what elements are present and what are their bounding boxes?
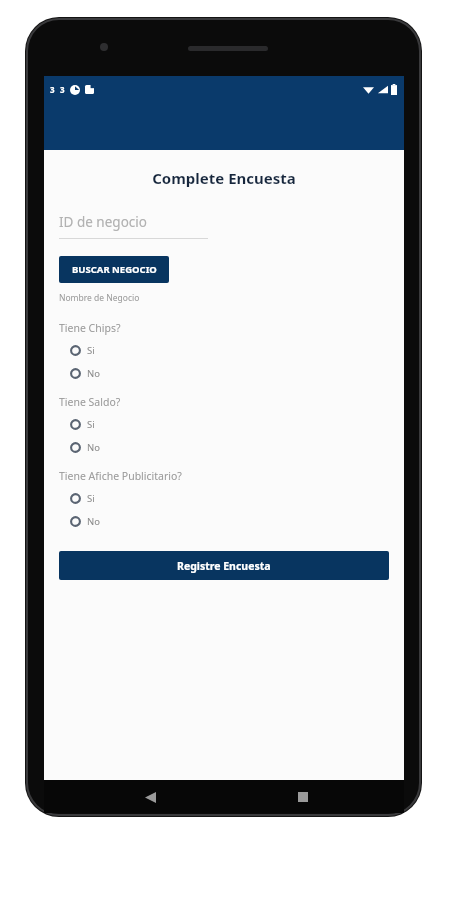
button[interactable]: No — [59, 363, 389, 383]
button[interactable]: Si — [59, 488, 389, 508]
staticText: Si — [87, 492, 95, 505]
button[interactable]: ID de negocio — [59, 213, 208, 239]
staticText: 3 — [60, 84, 65, 95]
staticText: Complete Encuesta — [152, 168, 296, 188]
staticText: Tiene Saldo? — [59, 395, 121, 409]
button[interactable]: BUSCAR NEGOCIO — [59, 256, 169, 283]
button[interactable]: Back — [137, 784, 163, 810]
staticText: 3 — [50, 84, 55, 95]
button[interactable]: Si — [59, 340, 389, 360]
staticText: Tiene Afiche Publicitario? — [59, 469, 182, 483]
staticText: Si — [87, 344, 95, 357]
button[interactable]: No — [59, 511, 389, 531]
button[interactable]: Recent apps — [290, 784, 316, 810]
staticText: No — [87, 367, 100, 380]
staticText: ID de negocio — [59, 213, 147, 231]
staticText: No — [87, 515, 100, 528]
staticText: Registre Encuesta — [177, 559, 271, 573]
button[interactable]: Si — [59, 414, 389, 434]
button[interactable]: No — [59, 437, 389, 457]
staticText: Nombre de Negocio — [59, 292, 140, 304]
staticText: Tiene Chips? — [59, 321, 121, 335]
staticText: No — [87, 441, 100, 454]
button[interactable]: Registre Encuesta — [59, 551, 389, 580]
staticText: BUSCAR NEGOCIO — [72, 263, 157, 276]
staticText: Si — [87, 418, 95, 431]
